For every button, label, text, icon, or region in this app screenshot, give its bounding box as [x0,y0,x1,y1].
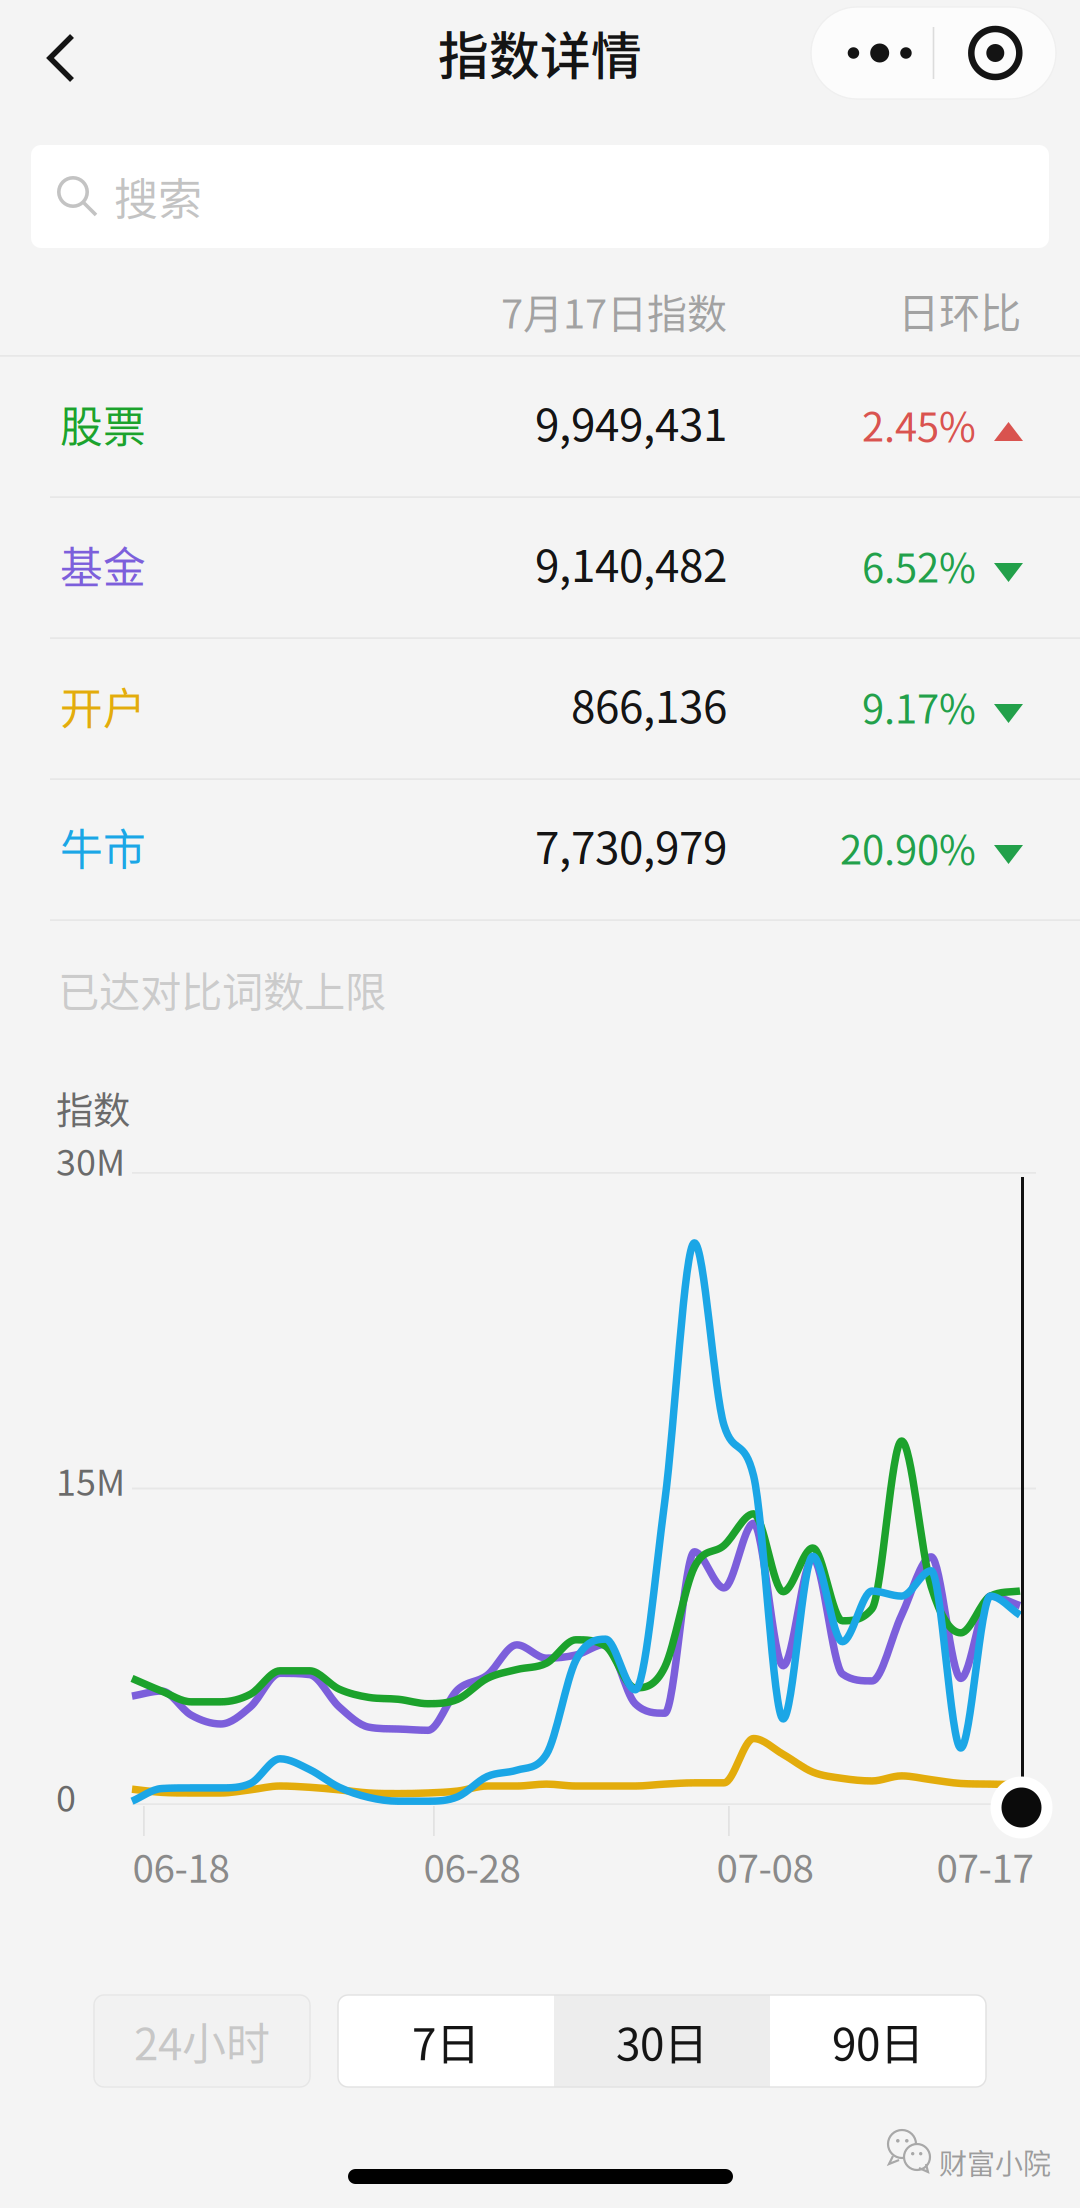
staticText: 指数 [56,1081,130,1135]
staticText: 06-18 [132,1838,229,1894]
button[interactable]: 30日 [554,1995,770,2087]
staticText: 日环比 [898,280,1021,340]
button[interactable]: 开户 [0,639,1080,778]
button[interactable]: 7日 [338,1995,554,2087]
staticText: 90日 [832,2009,924,2073]
staticText: 开户 [60,675,146,737]
button[interactable]: Close [934,7,1056,99]
staticText: 24小时 [134,2009,270,2073]
staticText: 06-28 [423,1838,520,1894]
staticText: 30日 [616,2009,708,2073]
button[interactable]: 搜索 [31,145,1049,248]
staticText: 07-17 [936,1838,1033,1894]
staticText: 牛市 [60,816,146,878]
staticText: 866,136 [571,672,727,736]
button[interactable]: Back [13,10,109,106]
staticText: 指数详情 [438,16,642,89]
staticText: 30M [56,1134,125,1186]
staticText: 9.17% [862,677,976,735]
button[interactable]: More [811,7,933,99]
staticText: 15M [56,1454,125,1506]
staticText: 搜索 [114,165,202,228]
staticText: 股票 [60,393,146,455]
staticText: 7月17日指数 [501,282,727,340]
button[interactable]: 股票 [0,357,1080,496]
staticText: 7,730,979 [535,813,727,877]
staticText: 基金 [60,534,146,596]
button[interactable]: 24小时 [94,1995,310,2087]
staticText: 07-08 [716,1838,813,1894]
button[interactable]: 牛市 [0,780,1080,919]
staticText: 0 [56,1770,76,1822]
staticText: 6.52% [862,536,976,594]
staticText: 9,140,482 [535,531,727,595]
button[interactable]: 基金 [0,498,1080,637]
staticText: 20.90% [840,818,976,876]
staticText: 已达对比词数上限 [58,959,386,1019]
staticText: 2.45% [862,395,976,453]
button[interactable]: 90日 [770,1995,986,2087]
staticText: 9,949,431 [535,390,727,454]
staticText: 7日 [412,2009,480,2073]
staticText: 财富小院 [939,2142,1051,2182]
